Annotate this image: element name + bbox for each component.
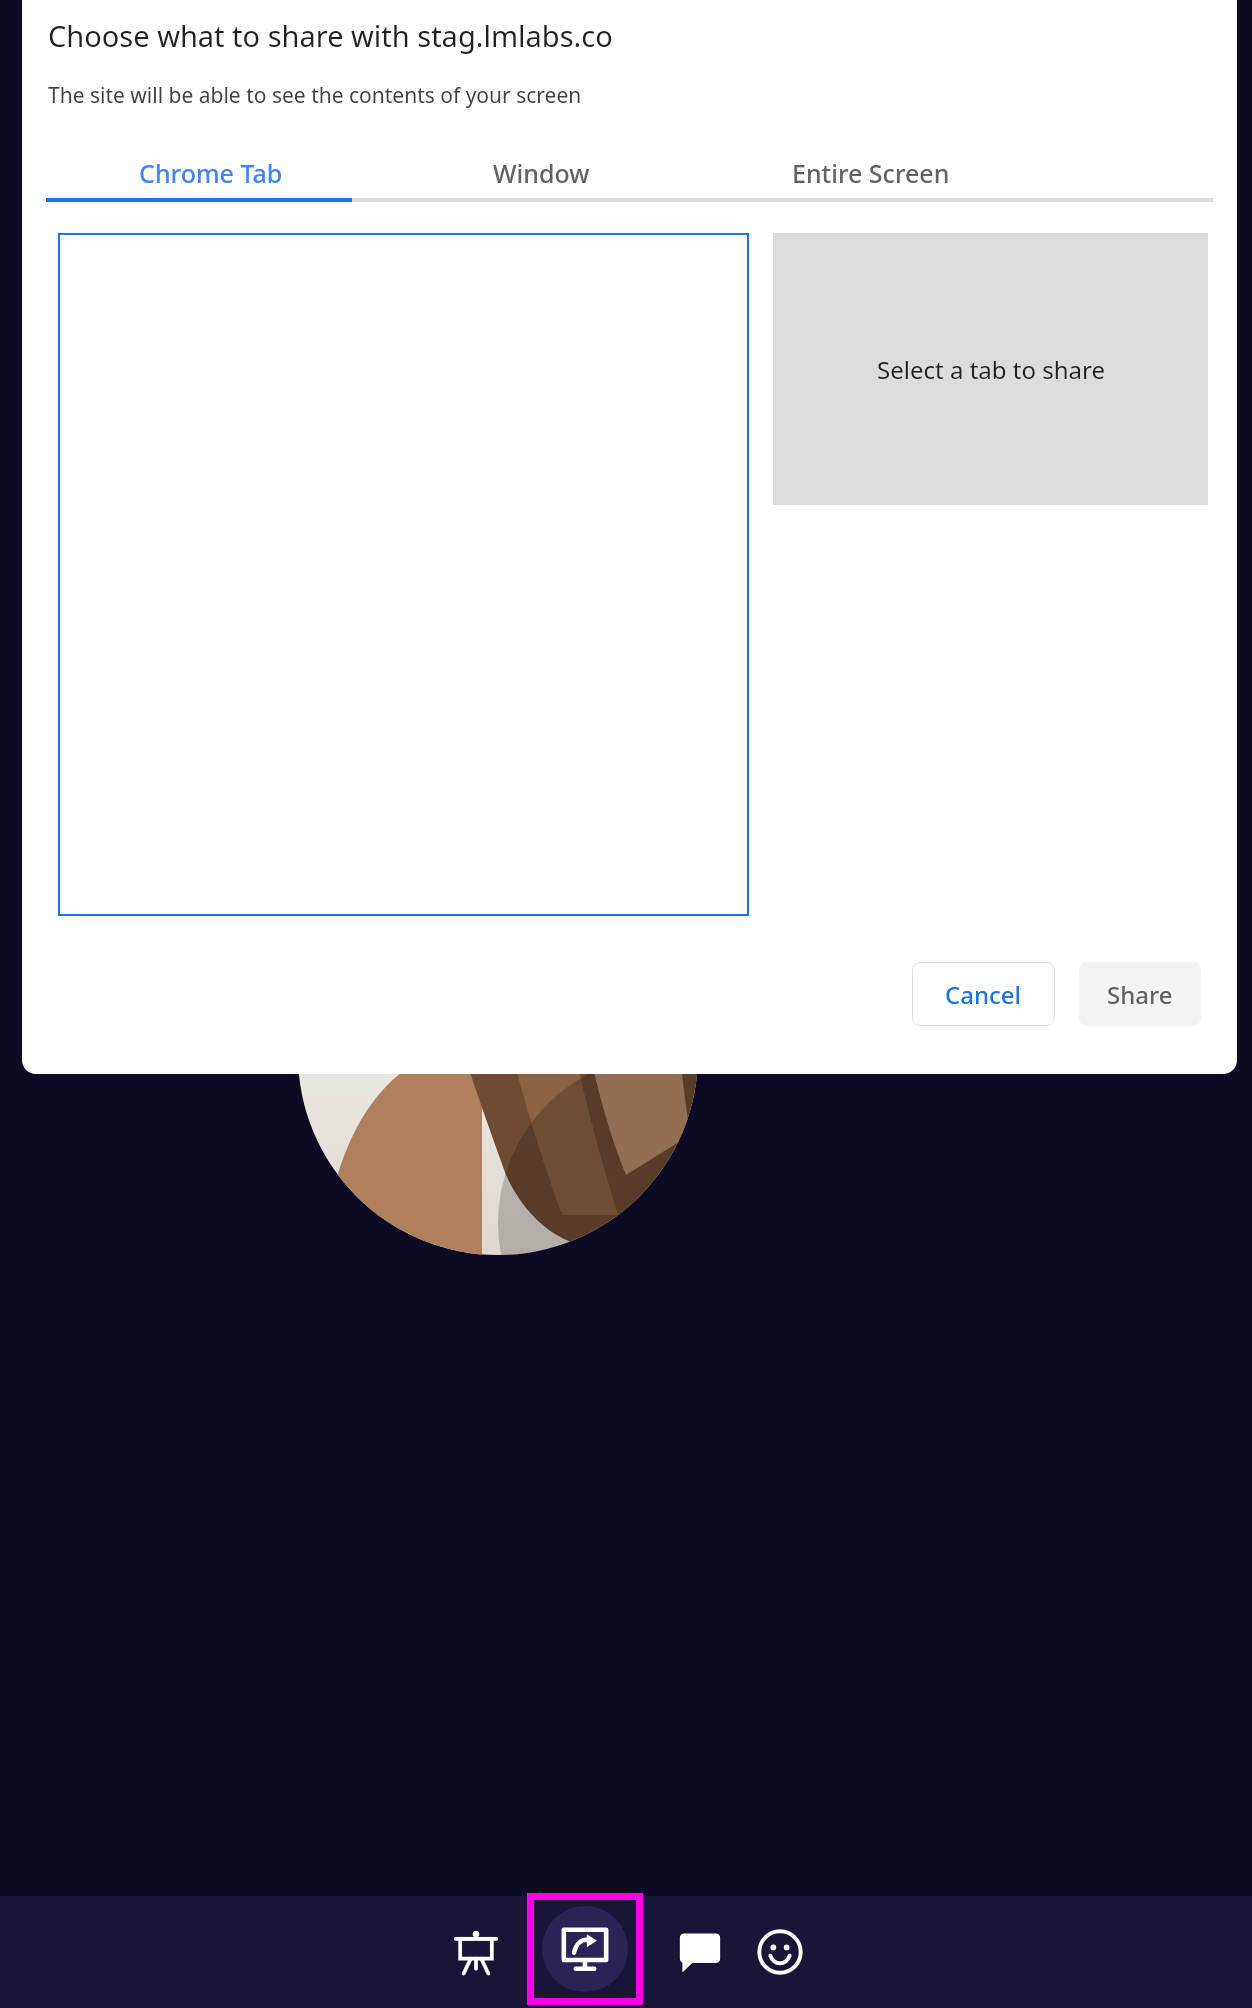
button[interactable]: Window xyxy=(376,148,706,198)
staticText: Entire Screen xyxy=(792,156,950,190)
button[interactable]: Cancel xyxy=(912,962,1055,1026)
button[interactable]: Entire Screen xyxy=(706,148,1036,198)
button[interactable]: Chrome Tab xyxy=(46,148,376,198)
staticText: Share xyxy=(1107,978,1173,1011)
staticText: Window xyxy=(493,156,590,190)
staticText: Cancel xyxy=(945,978,1022,1011)
button[interactable]: Chat xyxy=(664,1916,736,1988)
staticText: Select a tab to share xyxy=(877,353,1105,386)
button[interactable]: Reactions xyxy=(744,1916,816,1988)
staticText: The site will be able to see the content… xyxy=(48,81,582,110)
button[interactable]: Whiteboard xyxy=(440,1916,512,1988)
staticText: Choose what to share with stag.lmlabs.co xyxy=(48,16,613,55)
button[interactable]: Share screen xyxy=(527,1893,643,2005)
staticText: Chrome Tab xyxy=(139,156,283,190)
button[interactable] xyxy=(58,233,749,916)
button[interactable]: Share xyxy=(1079,962,1201,1026)
